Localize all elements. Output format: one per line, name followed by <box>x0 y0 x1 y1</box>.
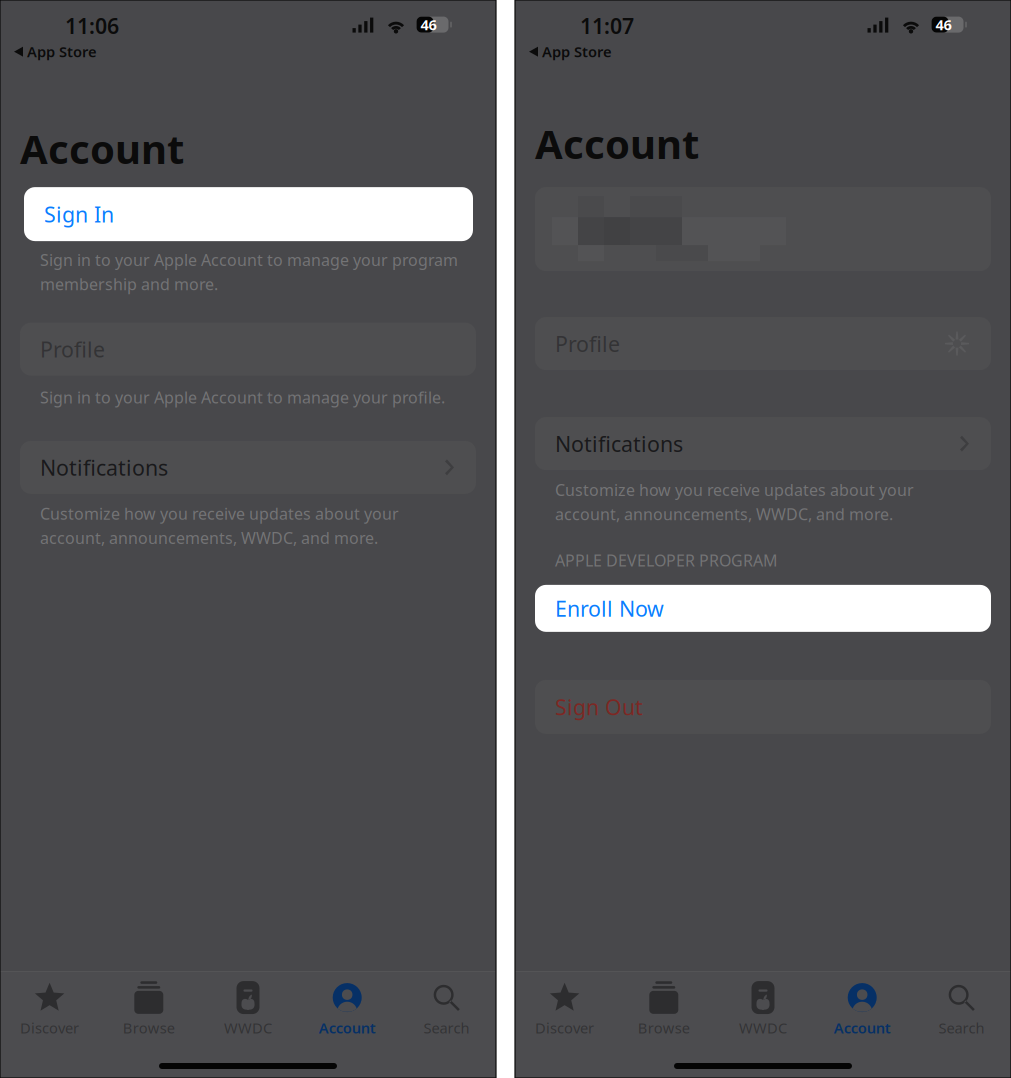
staticText: 11:06 <box>65 12 119 40</box>
staticText: 46 <box>935 15 951 34</box>
staticText: Account <box>20 122 184 175</box>
staticText: Profile <box>555 329 620 358</box>
staticText: account, announcements, WWDC, and more. <box>555 503 893 525</box>
staticText: Browse <box>638 1018 690 1038</box>
staticText: Notifications <box>555 429 683 458</box>
staticText: WWDC <box>739 1018 787 1038</box>
staticText: Discover <box>20 1018 79 1038</box>
button[interactable]: App Store <box>0 42 97 61</box>
staticText: Sign In <box>44 200 114 228</box>
staticText: APPLE DEVELOPER PROGRAM <box>555 550 778 571</box>
staticText: Sign in to your Apple Account to manage … <box>40 249 458 270</box>
staticText: Profile <box>40 335 105 363</box>
staticText: Browse <box>123 1018 175 1038</box>
staticText: Search <box>423 1018 469 1038</box>
staticText: 46 <box>420 15 436 34</box>
staticText: membership and more. <box>40 273 218 295</box>
staticText: 11:07 <box>580 12 634 40</box>
button[interactable]: Search <box>912 980 1011 1040</box>
staticText: Account <box>535 117 699 170</box>
staticText: App Store <box>27 42 97 61</box>
staticText: Discover <box>535 1018 594 1038</box>
staticText: Enroll Now <box>555 594 664 622</box>
staticText: Search <box>938 1018 984 1038</box>
staticText: Sign in to your Apple Account to manage … <box>40 387 445 408</box>
button[interactable]: Account <box>813 980 912 1040</box>
staticText: Account <box>834 1018 891 1038</box>
staticText: Customize how you receive updates about … <box>555 479 914 500</box>
button[interactable]: Notifications <box>535 417 991 470</box>
button[interactable]: Enroll Now <box>535 585 991 632</box>
button[interactable]: Discover <box>0 980 99 1040</box>
staticText: account, announcements, WWDC, and more. <box>40 527 378 548</box>
button[interactable]: Search <box>397 980 496 1040</box>
button[interactable]: App Store <box>515 42 612 61</box>
staticText: App Store <box>542 42 612 61</box>
staticText: Account <box>319 1018 376 1038</box>
button[interactable]: Sign In <box>24 187 473 241</box>
button[interactable]: Browse <box>99 980 198 1040</box>
button[interactable]: Browse <box>614 980 713 1040</box>
staticText: Customize how you receive updates about … <box>40 503 399 524</box>
button[interactable]: Sign Out <box>535 680 991 734</box>
button[interactable]: Discover <box>515 980 614 1040</box>
button[interactable]: WWDC <box>198 980 298 1040</box>
button[interactable]: Account <box>298 980 397 1040</box>
staticText: Sign Out <box>555 693 643 721</box>
staticText: Notifications <box>40 453 168 481</box>
staticText: WWDC <box>224 1018 272 1038</box>
button[interactable]: WWDC <box>713 980 813 1040</box>
button[interactable]: Notifications <box>20 441 476 494</box>
